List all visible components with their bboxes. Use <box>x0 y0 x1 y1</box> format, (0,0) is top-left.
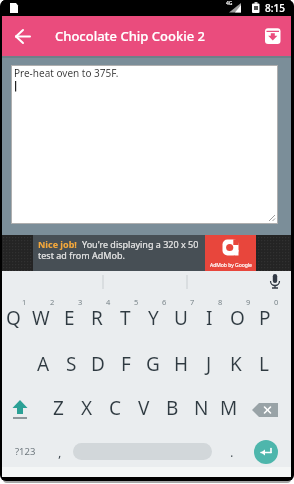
staticText: . <box>230 443 234 461</box>
staticText: 4G <box>226 0 233 7</box>
staticText: L <box>259 351 269 377</box>
staticText: , <box>58 443 62 461</box>
button[interactable]: L <box>250 351 278 377</box>
button[interactable]: P <box>251 305 279 331</box>
staticText: S <box>66 351 77 377</box>
staticText: A <box>37 351 50 377</box>
staticText: Chocolate Chip Cookie 2 <box>55 27 205 45</box>
button[interactable]: U <box>167 305 195 331</box>
button[interactable]: Nice job! <box>2 235 291 271</box>
button[interactable]: V <box>130 395 158 421</box>
staticText: You're displaying a 320 x 50 <box>82 238 199 250</box>
staticText: U <box>174 305 188 331</box>
staticText: P <box>259 305 271 331</box>
button[interactable]: I <box>195 305 223 331</box>
button[interactable]: M <box>215 395 243 421</box>
staticText: Q <box>6 305 21 331</box>
button[interactable]: C <box>101 395 129 421</box>
button[interactable]: R <box>83 305 111 331</box>
staticText: D <box>91 351 105 377</box>
staticText: T <box>120 305 131 331</box>
button[interactable] <box>73 443 212 460</box>
button[interactable]: G <box>139 351 167 377</box>
staticText: M <box>220 395 238 421</box>
button[interactable]: B <box>158 395 186 421</box>
staticText: 8:15 <box>265 1 285 15</box>
staticText: 3 <box>78 297 83 307</box>
staticText: Pre-heat oven to 375F. <box>14 66 119 80</box>
staticText: W <box>32 305 50 331</box>
staticText: 0 <box>274 297 279 307</box>
button[interactable]: , <box>50 441 70 463</box>
staticText: Y <box>148 305 159 331</box>
staticText: ?123 <box>15 445 36 458</box>
button[interactable] <box>254 440 278 464</box>
button[interactable]: X <box>73 395 101 421</box>
button[interactable]: F <box>112 351 140 377</box>
staticText: E <box>64 305 75 331</box>
button[interactable]: N <box>187 395 215 421</box>
staticText: 5 <box>134 297 139 307</box>
staticText: 2 <box>50 297 55 307</box>
staticText: V <box>138 395 150 421</box>
staticText: O <box>230 305 245 331</box>
button[interactable]: A <box>29 351 57 377</box>
staticText: I <box>206 305 213 331</box>
staticText: test ad from AdMob. <box>38 249 125 261</box>
staticText: 8 <box>218 297 223 307</box>
button[interactable] <box>6 20 38 52</box>
button[interactable] <box>250 396 282 424</box>
button[interactable]: T <box>111 305 139 331</box>
staticText: G <box>146 351 160 377</box>
staticText: R <box>91 305 103 331</box>
button[interactable]: Y <box>139 305 167 331</box>
button[interactable]: H <box>167 351 195 377</box>
staticText: 1 <box>22 297 27 307</box>
button[interactable]: . <box>222 441 242 463</box>
button[interactable]: D <box>84 351 112 377</box>
button[interactable]: O <box>223 305 251 331</box>
staticText: 6 <box>162 297 167 307</box>
staticText: Nice job! <box>38 238 77 250</box>
button[interactable]: ?123 <box>8 441 42 461</box>
staticText: X <box>81 395 93 421</box>
staticText: N <box>194 395 209 421</box>
button[interactable]: Z <box>44 395 72 421</box>
button[interactable]: Pre-heat oven to 375F. <box>11 65 278 224</box>
button[interactable]: K <box>222 351 250 377</box>
button[interactable]: E <box>55 305 83 331</box>
button[interactable]: W <box>27 305 55 331</box>
staticText: C <box>109 395 122 421</box>
staticText: B <box>166 395 179 421</box>
staticText: 4 <box>106 297 111 307</box>
button[interactable] <box>257 20 289 52</box>
button[interactable]: Q <box>0 305 27 331</box>
staticText: K <box>230 351 242 377</box>
staticText: AdMob by Google <box>210 262 252 269</box>
staticText: 9 <box>246 297 251 307</box>
staticText: J <box>206 351 212 377</box>
staticText: F <box>121 351 131 377</box>
staticText: Z <box>53 395 64 421</box>
button[interactable]: J <box>195 351 223 377</box>
button[interactable]: S <box>57 351 85 377</box>
button[interactable] <box>6 393 34 423</box>
staticText: H <box>174 351 189 377</box>
staticText: 7 <box>190 297 195 307</box>
